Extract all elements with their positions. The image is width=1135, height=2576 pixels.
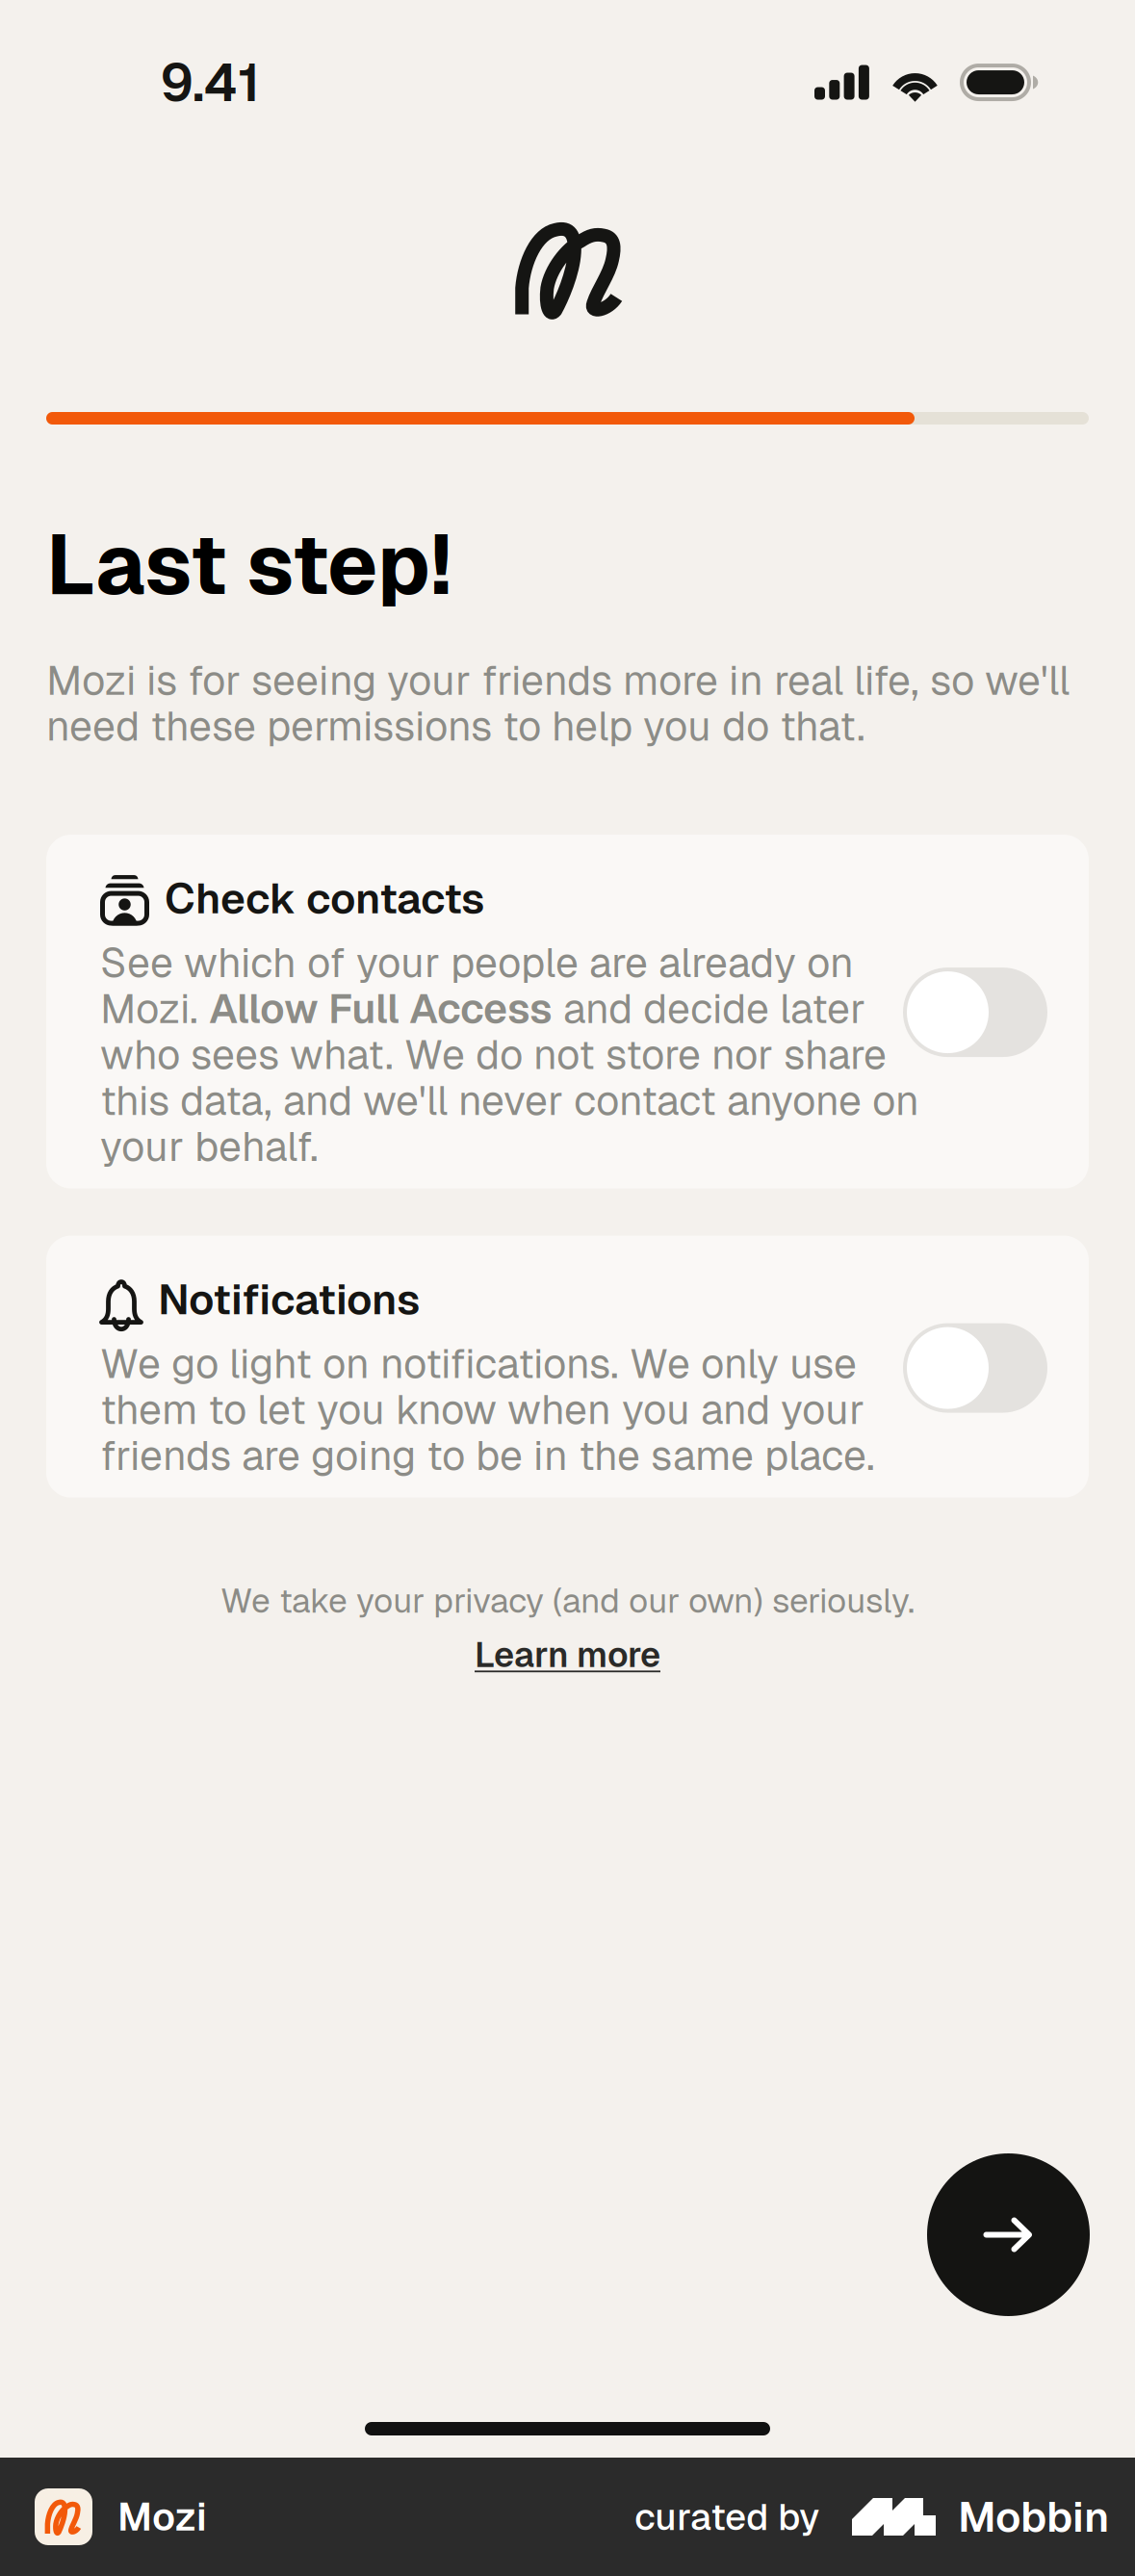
staticText: Mobbin	[958, 2489, 1109, 2544]
staticText: Last step!	[46, 510, 451, 619]
staticText: We take your privacy (and our own) serio…	[220, 1578, 915, 1623]
staticText: Check contacts	[165, 871, 484, 926]
button[interactable]: Check contacts	[46, 835, 1089, 1188]
staticText: Mozi	[117, 2492, 207, 2542]
button[interactable]: Continue	[927, 2153, 1090, 2316]
staticText: curated by	[634, 2493, 819, 2541]
staticText: Notifications	[158, 1272, 420, 1327]
staticText: We go light on notifications. We only us…	[100, 1341, 875, 1478]
staticText: Mozi is for seeing your friends more in …	[46, 657, 1070, 749]
button[interactable]: Learn more	[475, 1632, 660, 1677]
staticText: Learn more	[475, 1632, 660, 1677]
staticText: See which of your people are already on …	[100, 940, 919, 1169]
staticText: 9.41	[160, 48, 260, 117]
button[interactable]: Notifications	[46, 1236, 1089, 1498]
